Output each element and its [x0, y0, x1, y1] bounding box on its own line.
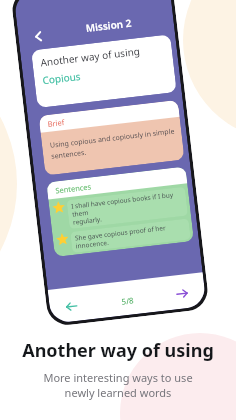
staticText: Sentences: [55, 181, 92, 196]
button[interactable]: Next: [173, 285, 191, 302]
staticText: Another way of using: [40, 44, 141, 69]
staticText: Brief: [47, 117, 65, 129]
staticText: Another way of using: [22, 338, 214, 363]
button[interactable]: Another way of using: [31, 34, 177, 108]
button[interactable]: Sentences: [46, 166, 194, 257]
button[interactable]: Back: [27, 25, 50, 48]
staticText: She gave copious proof of her innocence.: [74, 223, 168, 251]
staticText: I shall have copious books if I buy them…: [71, 189, 184, 227]
staticText: Using copious and copiously in simple se…: [50, 126, 177, 161]
staticText: Copious: [42, 69, 82, 87]
staticText: 5/8: [121, 294, 135, 307]
staticText: More interesting ways to use newly learn…: [43, 370, 193, 400]
button[interactable]: Previous: [63, 298, 81, 315]
button[interactable]: Brief: [39, 100, 185, 176]
staticText: Mission 2: [85, 16, 132, 35]
